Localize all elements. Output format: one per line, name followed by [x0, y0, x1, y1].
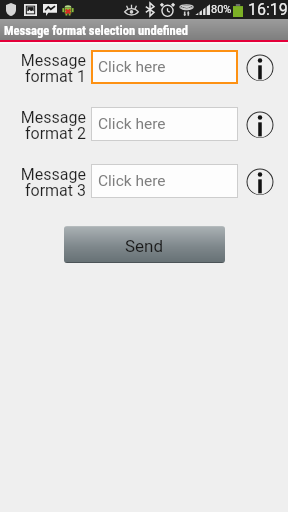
staticText: Message format selection undefined — [4, 23, 189, 38]
button[interactable]: Send — [64, 226, 225, 263]
staticText: Message format 1 — [0, 51, 86, 85]
staticText: Message format 3 — [0, 165, 86, 199]
button[interactable]: Information — [246, 110, 274, 138]
staticText: Click here — [98, 172, 166, 190]
button[interactable]: Information — [246, 53, 274, 81]
staticText: 80% — [211, 3, 232, 16]
staticText: Send — [125, 236, 164, 256]
button[interactable]: Click here — [91, 107, 238, 141]
staticText: Click here — [98, 58, 166, 76]
staticText: Click here — [98, 115, 166, 133]
button[interactable]: Click here — [91, 164, 238, 198]
staticText: Message format 2 — [0, 108, 86, 142]
button[interactable]: Information — [246, 167, 274, 195]
staticText: 16:19 — [248, 0, 288, 19]
button[interactable]: Click here — [91, 50, 238, 84]
